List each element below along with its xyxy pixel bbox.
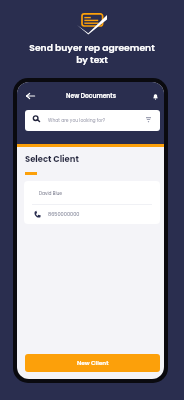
- button[interactable]: Notifications: [146, 87, 164, 105]
- staticText: David Blue: [39, 190, 63, 196]
- staticText: Send buyer rep agreement by text: [29, 41, 155, 66]
- staticText: New Client: [77, 359, 109, 367]
- staticText: 8650000000: [48, 211, 80, 218]
- staticText: New Documents: [66, 92, 116, 100]
- staticText: What are you looking for?: [48, 117, 106, 123]
- staticText: Select Client: [25, 153, 79, 165]
- button[interactable]: New Client: [25, 354, 160, 372]
- button[interactable]: Back: [21, 87, 39, 105]
- button[interactable]: David Blue: [24, 181, 160, 224]
- button[interactable]: What are you looking for?: [25, 110, 160, 131]
